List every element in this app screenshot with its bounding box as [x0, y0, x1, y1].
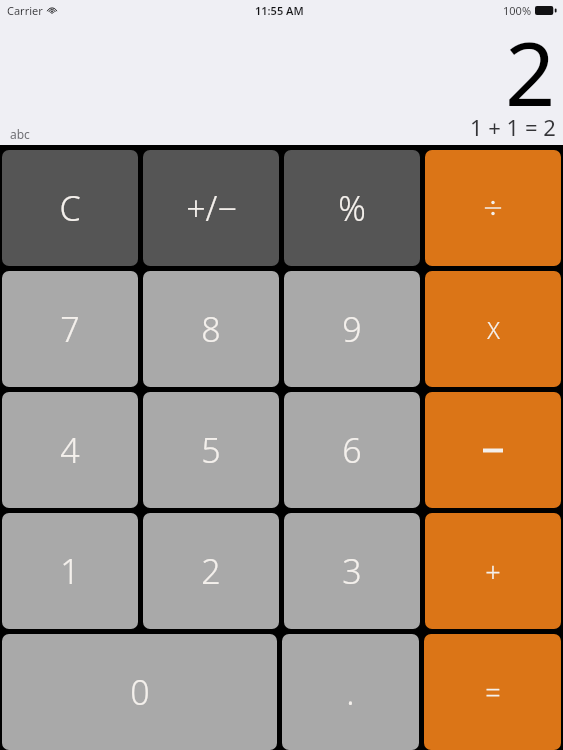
- button[interactable]: Multiply: [425, 271, 561, 387]
- button[interactable]: 9: [284, 271, 420, 387]
- staticText: 7: [60, 306, 80, 352]
- button[interactable]: 0: [2, 634, 277, 750]
- button[interactable]: C: [2, 150, 138, 266]
- button[interactable]: Divide: [425, 150, 561, 266]
- button[interactable]: +/−: [143, 150, 279, 266]
- button[interactable]: 6: [284, 392, 420, 508]
- staticText: 3: [342, 548, 362, 594]
- staticText: 5: [201, 427, 221, 473]
- staticText: 8: [201, 306, 221, 352]
- staticText: 9: [342, 306, 362, 352]
- button[interactable]: Equals: [424, 634, 561, 750]
- staticText: =: [485, 674, 501, 711]
- staticText: 0: [130, 669, 150, 715]
- staticText: 1 + 1 = 2: [470, 112, 556, 142]
- staticText: %: [338, 185, 366, 231]
- staticText: Carrier: [7, 3, 43, 18]
- button[interactable]: .: [282, 634, 419, 750]
- button[interactable]: 2: [143, 513, 279, 629]
- staticText: 100%: [503, 3, 532, 18]
- staticText: abc: [10, 126, 30, 142]
- button[interactable]: 3: [284, 513, 420, 629]
- staticText: X: [487, 314, 500, 345]
- staticText: +: [485, 553, 501, 590]
- button[interactable]: 1: [2, 513, 138, 629]
- button[interactable]: 7: [2, 271, 138, 387]
- button[interactable]: 4: [2, 392, 138, 508]
- staticText: 1: [60, 548, 80, 594]
- staticText: C: [59, 185, 81, 231]
- staticText: 11:55 AM: [255, 3, 304, 18]
- staticText: +/−: [186, 185, 237, 231]
- staticText: .: [346, 669, 355, 715]
- button[interactable]: Plus: [425, 513, 561, 629]
- button[interactable]: 5: [143, 392, 279, 508]
- staticText: 6: [342, 427, 362, 473]
- button[interactable]: Minus: [425, 392, 561, 508]
- staticText: 2: [505, 12, 556, 132]
- button[interactable]: 8: [143, 271, 279, 387]
- button[interactable]: %: [284, 150, 420, 266]
- staticText: 4: [60, 427, 80, 473]
- staticText: 2: [201, 548, 221, 594]
